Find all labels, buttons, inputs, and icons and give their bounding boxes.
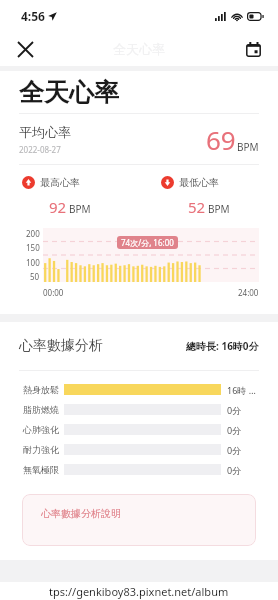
staticText: 4:56 (21, 8, 45, 24)
staticText: 74次/分, 16:00 (121, 237, 174, 248)
staticText: 92 (49, 197, 67, 217)
button[interactable]: 最低心率 (161, 176, 278, 217)
staticText: 2022-08-27 (19, 144, 61, 155)
staticText: 全天心率 (113, 41, 165, 57)
button[interactable]: Close (10, 34, 40, 64)
staticText: 耐力強化 (23, 444, 61, 455)
button[interactable]: Calendar (238, 34, 268, 64)
staticText: 69 (206, 122, 236, 157)
button[interactable]: 最高心率 (22, 176, 139, 217)
staticText: 心率數據分析說明 (41, 507, 121, 520)
button[interactable]: 脂肪燃燒 (23, 401, 259, 418)
staticText: BPM (208, 202, 230, 216)
staticText: 總時長: 16時0分 (186, 339, 259, 353)
button[interactable]: 耐力強化 (23, 441, 259, 458)
staticText: 00:00 (43, 287, 64, 298)
staticText: 52 (188, 197, 206, 217)
staticText: 平均心率 (19, 124, 71, 140)
staticText: 熱身放鬆 (23, 384, 61, 395)
staticText: 16時 … (227, 384, 259, 396)
staticText: 50 (30, 271, 40, 282)
staticText: BPM (237, 140, 259, 154)
button[interactable]: 心率數據分析說明 (22, 494, 256, 546)
staticText: 無氧極限 (23, 464, 61, 475)
staticText: 最高心率 (40, 176, 80, 189)
staticText: 24:00 (238, 287, 259, 298)
staticText: 全天心率 (19, 77, 119, 108)
staticText: tps://genkiboy83.pixnet.net/album (49, 584, 229, 599)
staticText: 心率數據分析 (19, 337, 103, 355)
staticText: 心肺強化 (23, 424, 61, 435)
staticText: BPM (69, 202, 91, 216)
staticText: 0分 (227, 444, 259, 456)
staticText: 100 (26, 257, 40, 268)
button[interactable]: 熱身放鬆 (23, 381, 259, 398)
staticText: 0分 (227, 424, 259, 436)
staticText: 0分 (227, 464, 259, 476)
button[interactable]: 無氧極限 (23, 461, 259, 478)
staticText: 0分 (227, 404, 259, 416)
button[interactable]: 心肺強化 (23, 421, 259, 438)
staticText: 200 (26, 228, 40, 239)
staticText: 最低心率 (179, 176, 219, 189)
staticText: 脂肪燃燒 (23, 404, 61, 415)
staticText: 150 (26, 242, 40, 253)
